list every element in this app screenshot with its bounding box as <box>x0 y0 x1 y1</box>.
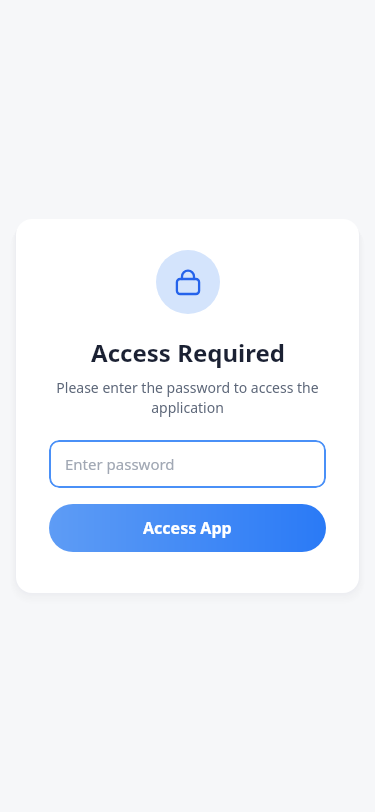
staticText: Enter password <box>65 454 175 474</box>
button[interactable]: Enter password <box>49 440 326 488</box>
button[interactable]: Access App <box>49 504 326 552</box>
staticText: Access App <box>143 517 232 539</box>
other: Locked <box>156 250 220 314</box>
staticText: Please enter the password to access the … <box>46 378 329 417</box>
staticText: Access Required <box>91 336 285 369</box>
